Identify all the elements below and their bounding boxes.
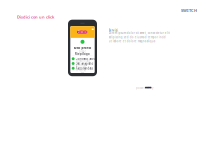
staticText: powered by [136, 86, 153, 90]
button[interactable]: Contratto attivo [70, 57, 95, 62]
staticText: Riepilogo [75, 52, 90, 56]
staticText: ut labore et dolore magna aliqua [109, 39, 155, 43]
button[interactable]: SWITCH [181, 8, 197, 13]
staticText: Contratto attivo [76, 57, 97, 61]
staticText: in corso [76, 68, 87, 72]
staticText: Dati anagrafici [76, 62, 94, 65]
button[interactable]: Disdici [77, 31, 87, 33]
button[interactable]: Raccomandata [70, 67, 95, 72]
staticText: Raccomandata [76, 67, 93, 70]
staticText: grazie [78, 50, 86, 53]
staticText: Disdici con un click [17, 14, 54, 20]
button[interactable]: Dati anagrafici [70, 62, 95, 67]
staticText: verificati [76, 64, 87, 67]
button[interactable]: Menu [92, 29, 94, 30]
staticText: adipiscing sed do eiusmod tempor incid [109, 35, 166, 39]
staticText: Lorem ipsum dolor sit amet, consectetur … [109, 31, 170, 35]
staticText: Tutto pronto [73, 46, 91, 50]
staticText: completato [76, 59, 91, 62]
staticText: SWITCH [181, 8, 197, 13]
staticText: Disdici [78, 30, 87, 34]
staticText: Servizi [109, 29, 118, 32]
